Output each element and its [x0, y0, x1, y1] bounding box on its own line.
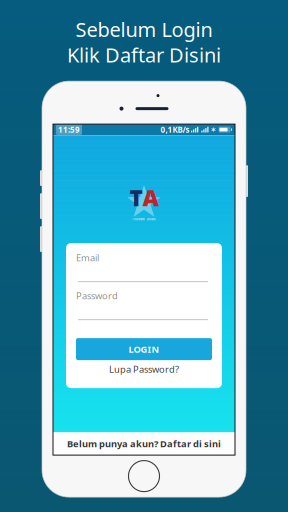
button[interactable]: Belum punya akun? Daftar di sini: [53, 432, 235, 455]
staticText: TRANSFER ANTAR: [132, 217, 156, 221]
staticText: LOGIN: [128, 343, 159, 355]
staticText: Klik Daftar Disini: [67, 42, 221, 68]
staticText: Password: [76, 289, 118, 302]
staticText: Sebelum Login: [75, 16, 212, 43]
staticText: ✶: [210, 125, 217, 134]
staticText: 0,1KB/s: [161, 124, 190, 135]
button[interactable]: LOGIN: [76, 338, 212, 360]
staticText: Email: [76, 251, 99, 264]
staticText: A: [142, 182, 158, 212]
staticText: Belum punya akun? Daftar di sini: [67, 437, 221, 450]
staticText: 11:59: [58, 124, 80, 135]
staticText: T: [129, 182, 142, 212]
button[interactable]: Lupa Password?: [76, 360, 212, 378]
staticText: Lupa Password?: [109, 363, 179, 375]
